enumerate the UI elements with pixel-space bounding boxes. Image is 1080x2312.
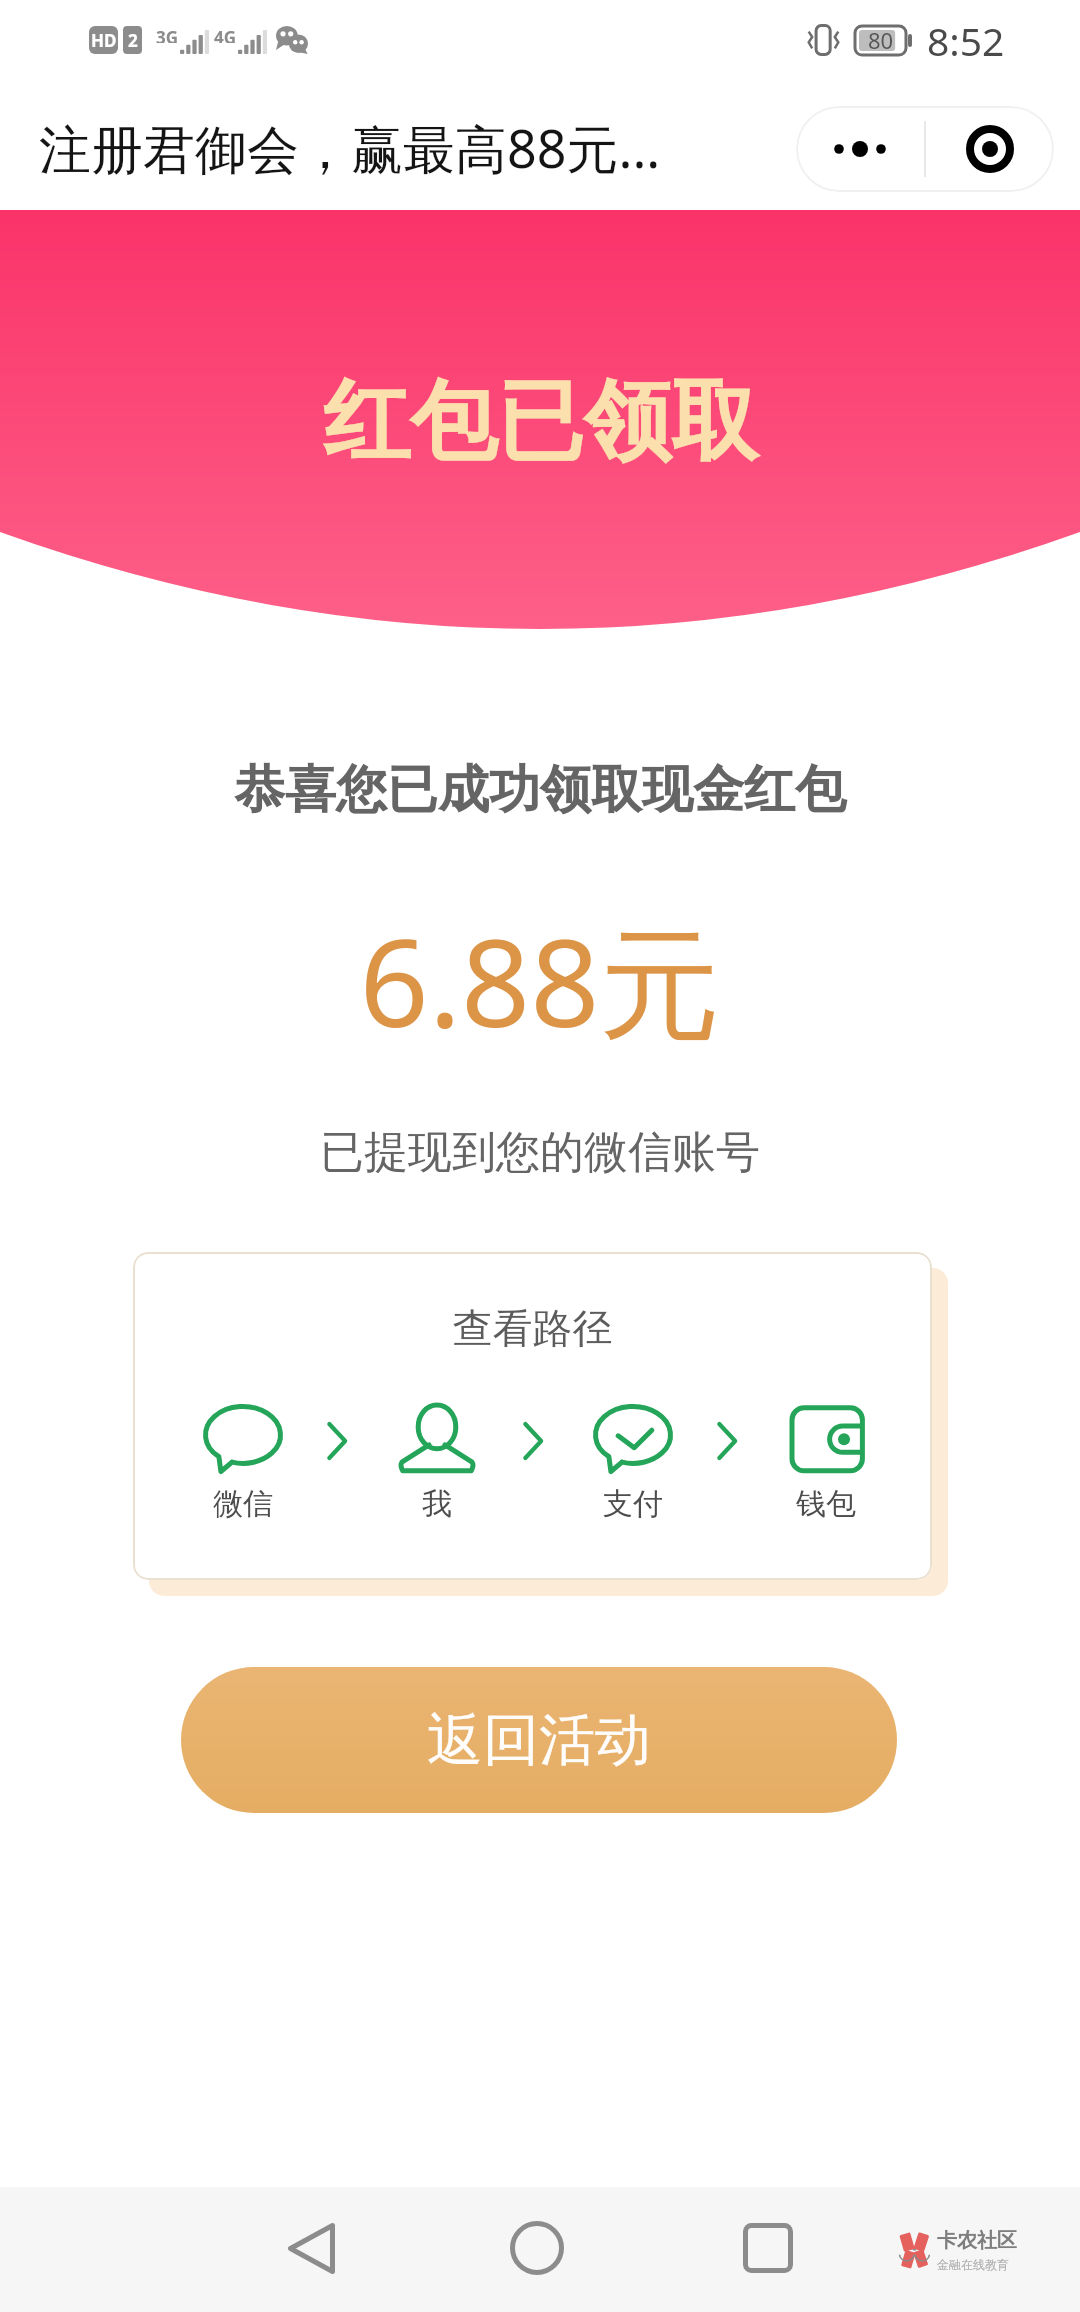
button[interactable]: More options	[796, 106, 924, 192]
staticText: 2	[128, 29, 138, 52]
button[interactable]: Recent apps	[728, 2208, 808, 2288]
staticText: 微信	[213, 1485, 273, 1523]
button[interactable]: Back	[271, 2208, 351, 2288]
staticText: 4G	[214, 26, 237, 43]
staticText: 80	[868, 25, 894, 55]
staticText: 已提现到您的微信账号	[0, 1125, 1080, 1180]
staticText: 返回活动	[427, 1705, 651, 1776]
button[interactable]: 返回活动	[181, 1667, 897, 1813]
staticText: 注册君御会，赢最高88元...	[39, 112, 661, 183]
staticText: HD	[91, 29, 117, 52]
staticText: 6.88元	[0, 898, 1080, 1063]
staticText: 查看路径	[133, 1303, 932, 1353]
staticText: 3G	[156, 26, 179, 43]
staticText: 钱包	[796, 1485, 856, 1523]
staticText: 恭喜您已成功领取现金红包	[0, 758, 1080, 822]
staticText: 金融在线教育	[937, 2257, 1009, 2272]
button[interactable]: Home	[497, 2208, 577, 2288]
staticText: 我	[422, 1485, 452, 1523]
staticText: 8:52	[927, 14, 1005, 67]
button[interactable]: Close mini program	[926, 106, 1054, 192]
staticText: 支付	[603, 1485, 663, 1523]
staticText: 卡农社区	[937, 2228, 1017, 2253]
staticText: 红包已领取	[323, 367, 758, 477]
